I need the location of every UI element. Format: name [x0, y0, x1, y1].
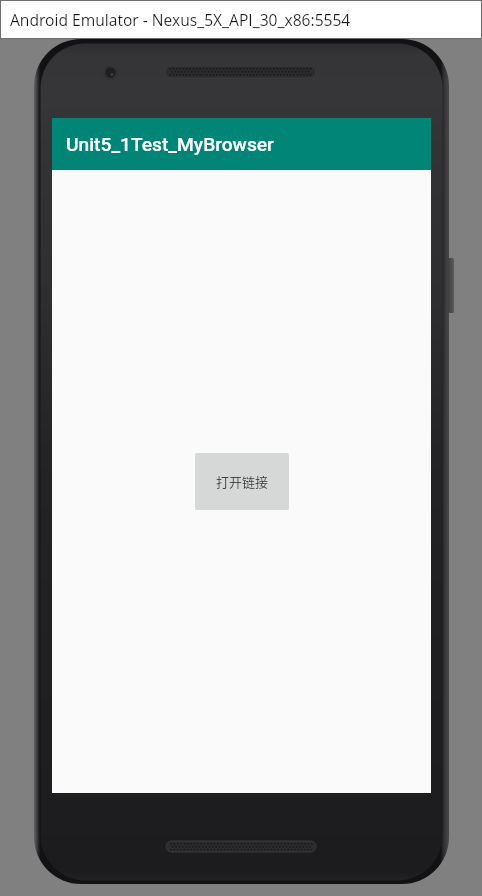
staticText: Android Emulator - Nexus_5X_API_30_x86:5… — [10, 9, 351, 30]
staticText: Unit5_1Test_MyBrowser — [66, 133, 274, 156]
button[interactable]: 打开链接 — [195, 453, 289, 510]
staticText: 打开链接 — [216, 472, 269, 491]
